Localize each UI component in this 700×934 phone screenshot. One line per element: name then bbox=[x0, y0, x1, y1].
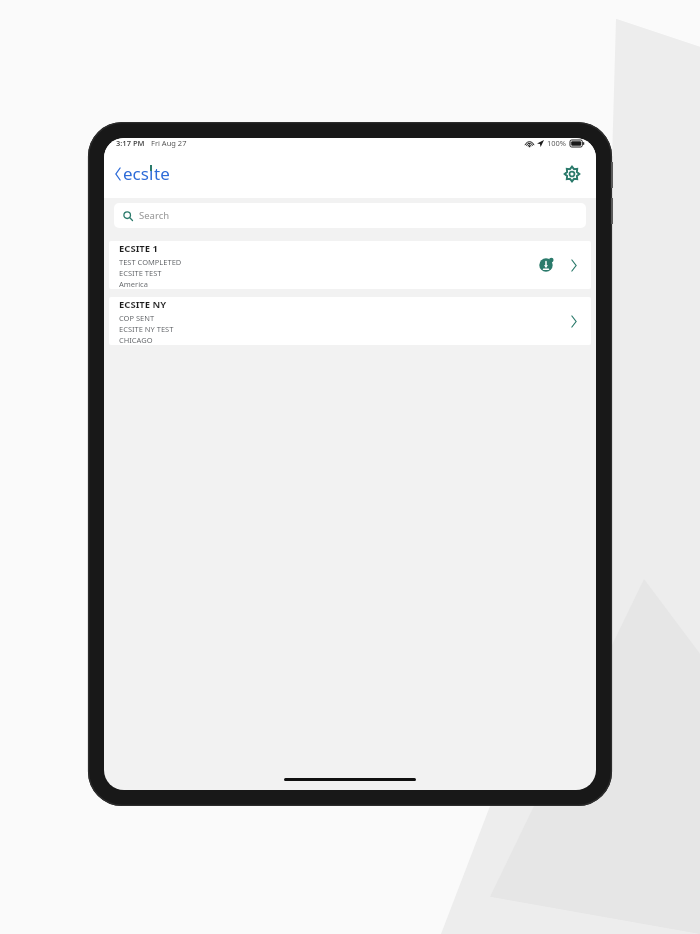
staticText: te bbox=[154, 162, 170, 185]
staticText: America bbox=[119, 279, 148, 289]
staticText: Fri Aug 27 bbox=[151, 138, 187, 148]
staticText: 3:17 PM bbox=[116, 138, 145, 148]
button[interactable]: Open details bbox=[565, 256, 583, 274]
staticText: COP SENT bbox=[119, 313, 155, 323]
button[interactable]: Download bbox=[536, 255, 556, 275]
button[interactable]: Open details bbox=[565, 312, 583, 330]
staticText: ECSITE NY TEST bbox=[119, 324, 174, 334]
staticText: Search bbox=[139, 209, 170, 222]
button[interactable]: ecs bbox=[115, 158, 170, 189]
staticText: TEST COMPLETED bbox=[119, 257, 182, 267]
staticText: ECSITE 1 bbox=[119, 242, 159, 255]
staticText: ECSITE TEST bbox=[119, 268, 162, 278]
button[interactable]: Search bbox=[114, 203, 586, 228]
button[interactable]: ECSITE 1 bbox=[109, 241, 591, 289]
staticText: 100% bbox=[547, 138, 567, 148]
button[interactable]: Settings bbox=[559, 161, 585, 187]
staticText: CHICAGO bbox=[119, 335, 153, 345]
staticText: i bbox=[149, 162, 154, 185]
staticText: ECSITE NY bbox=[119, 298, 167, 311]
staticText: ecs bbox=[123, 162, 149, 185]
button[interactable]: ECSITE NY bbox=[109, 297, 591, 345]
